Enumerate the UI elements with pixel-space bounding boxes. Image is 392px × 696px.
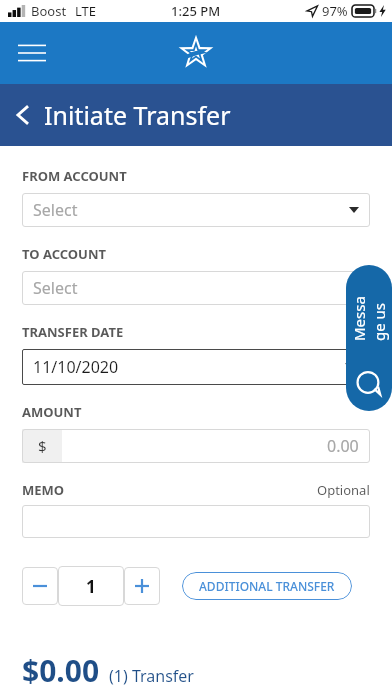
button[interactable]: Home (173, 30, 219, 76)
staticText: Select (33, 199, 78, 221)
button[interactable]: 1 (58, 566, 124, 606)
staticText: 11/10/2020 (33, 356, 119, 378)
staticText: 1 (86, 575, 96, 598)
button[interactable] (124, 567, 160, 605)
staticText: 1:25 PM (171, 2, 221, 20)
button[interactable]: 11/10/2020 (22, 349, 370, 385)
staticText: (1) Transfer (109, 665, 194, 687)
staticText: Message us (349, 295, 389, 341)
button[interactable]: $ (22, 429, 370, 463)
staticText: MEMO (22, 481, 65, 499)
button[interactable]: Initiate Transfer (14, 98, 231, 132)
staticText: AMOUNT (22, 403, 82, 421)
button[interactable]: Menu (8, 29, 56, 77)
staticText: Optional (317, 481, 370, 499)
staticText: ADDITIONAL TRANSFER (199, 578, 335, 594)
button[interactable]: Select (22, 271, 370, 305)
staticText: TO ACCOUNT (22, 245, 106, 263)
staticText: 97% (322, 2, 348, 20)
button[interactable]: ADDITIONAL TRANSFER (182, 572, 352, 600)
button[interactable] (22, 567, 58, 605)
staticText: TRANSFER DATE (22, 323, 124, 341)
button[interactable] (22, 505, 370, 538)
staticText: Boost (31, 2, 67, 20)
staticText: $0.00 (22, 650, 100, 691)
staticText: LTE (75, 2, 97, 20)
staticText: $ (38, 436, 47, 456)
staticText: FROM ACCOUNT (22, 167, 127, 185)
button[interactable]: Message us (346, 265, 392, 411)
staticText: 0.00 (327, 435, 359, 457)
staticText: Initiate Transfer (44, 98, 231, 132)
button[interactable]: Select (22, 193, 370, 227)
staticText: Select (33, 277, 78, 299)
